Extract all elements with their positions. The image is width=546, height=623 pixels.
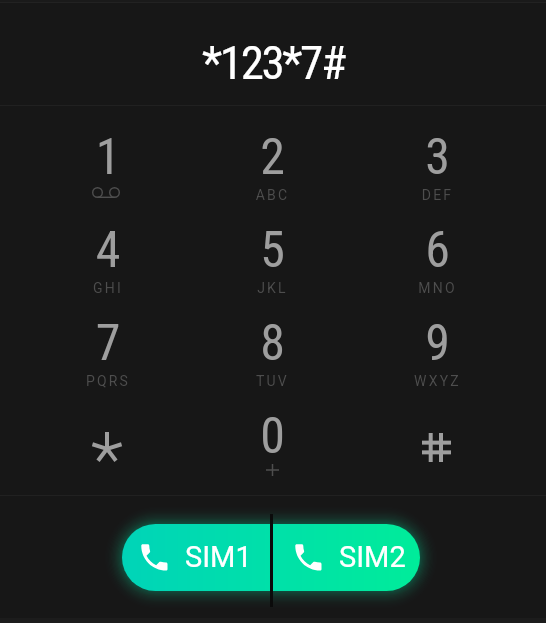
staticText: 1 <box>26 128 190 187</box>
staticText: SIM1 <box>185 540 252 574</box>
button[interactable]: SIM1 <box>122 524 269 591</box>
staticText: TUV <box>190 373 355 389</box>
staticText: *123*7# <box>202 35 345 90</box>
staticText: GHI <box>26 280 190 296</box>
staticText: JKL <box>190 280 355 296</box>
button[interactable]: 3 <box>355 117 520 210</box>
button[interactable]: SIM2 <box>274 524 420 591</box>
button[interactable]: 4 <box>26 210 190 303</box>
staticText: 9 <box>355 314 520 373</box>
staticText: 4 <box>26 221 190 280</box>
staticText: 6 <box>355 221 520 280</box>
staticText: PQRS <box>26 373 190 389</box>
staticText: 8 <box>190 314 355 373</box>
staticText: DEF <box>355 187 520 203</box>
staticText: 7 <box>26 314 190 373</box>
button[interactable]: 2 <box>190 117 355 210</box>
button[interactable]: 8 <box>190 303 355 396</box>
button[interactable]: 5 <box>190 210 355 303</box>
button[interactable]: 6 <box>355 210 520 303</box>
button[interactable]: 1 <box>26 117 190 210</box>
staticText: ABC <box>190 187 355 203</box>
button[interactable] <box>26 396 190 489</box>
staticText: WXYZ <box>355 373 520 389</box>
staticText: MNO <box>355 280 520 296</box>
staticText: 2 <box>190 128 355 187</box>
staticText: 3 <box>355 128 520 187</box>
staticText: 0 <box>190 407 355 466</box>
staticText: 5 <box>190 221 355 280</box>
button[interactable]: 7 <box>26 303 190 396</box>
button[interactable] <box>355 396 520 489</box>
staticText: SIM2 <box>339 540 406 574</box>
button[interactable]: 0 <box>190 396 355 489</box>
button[interactable]: 9 <box>355 303 520 396</box>
